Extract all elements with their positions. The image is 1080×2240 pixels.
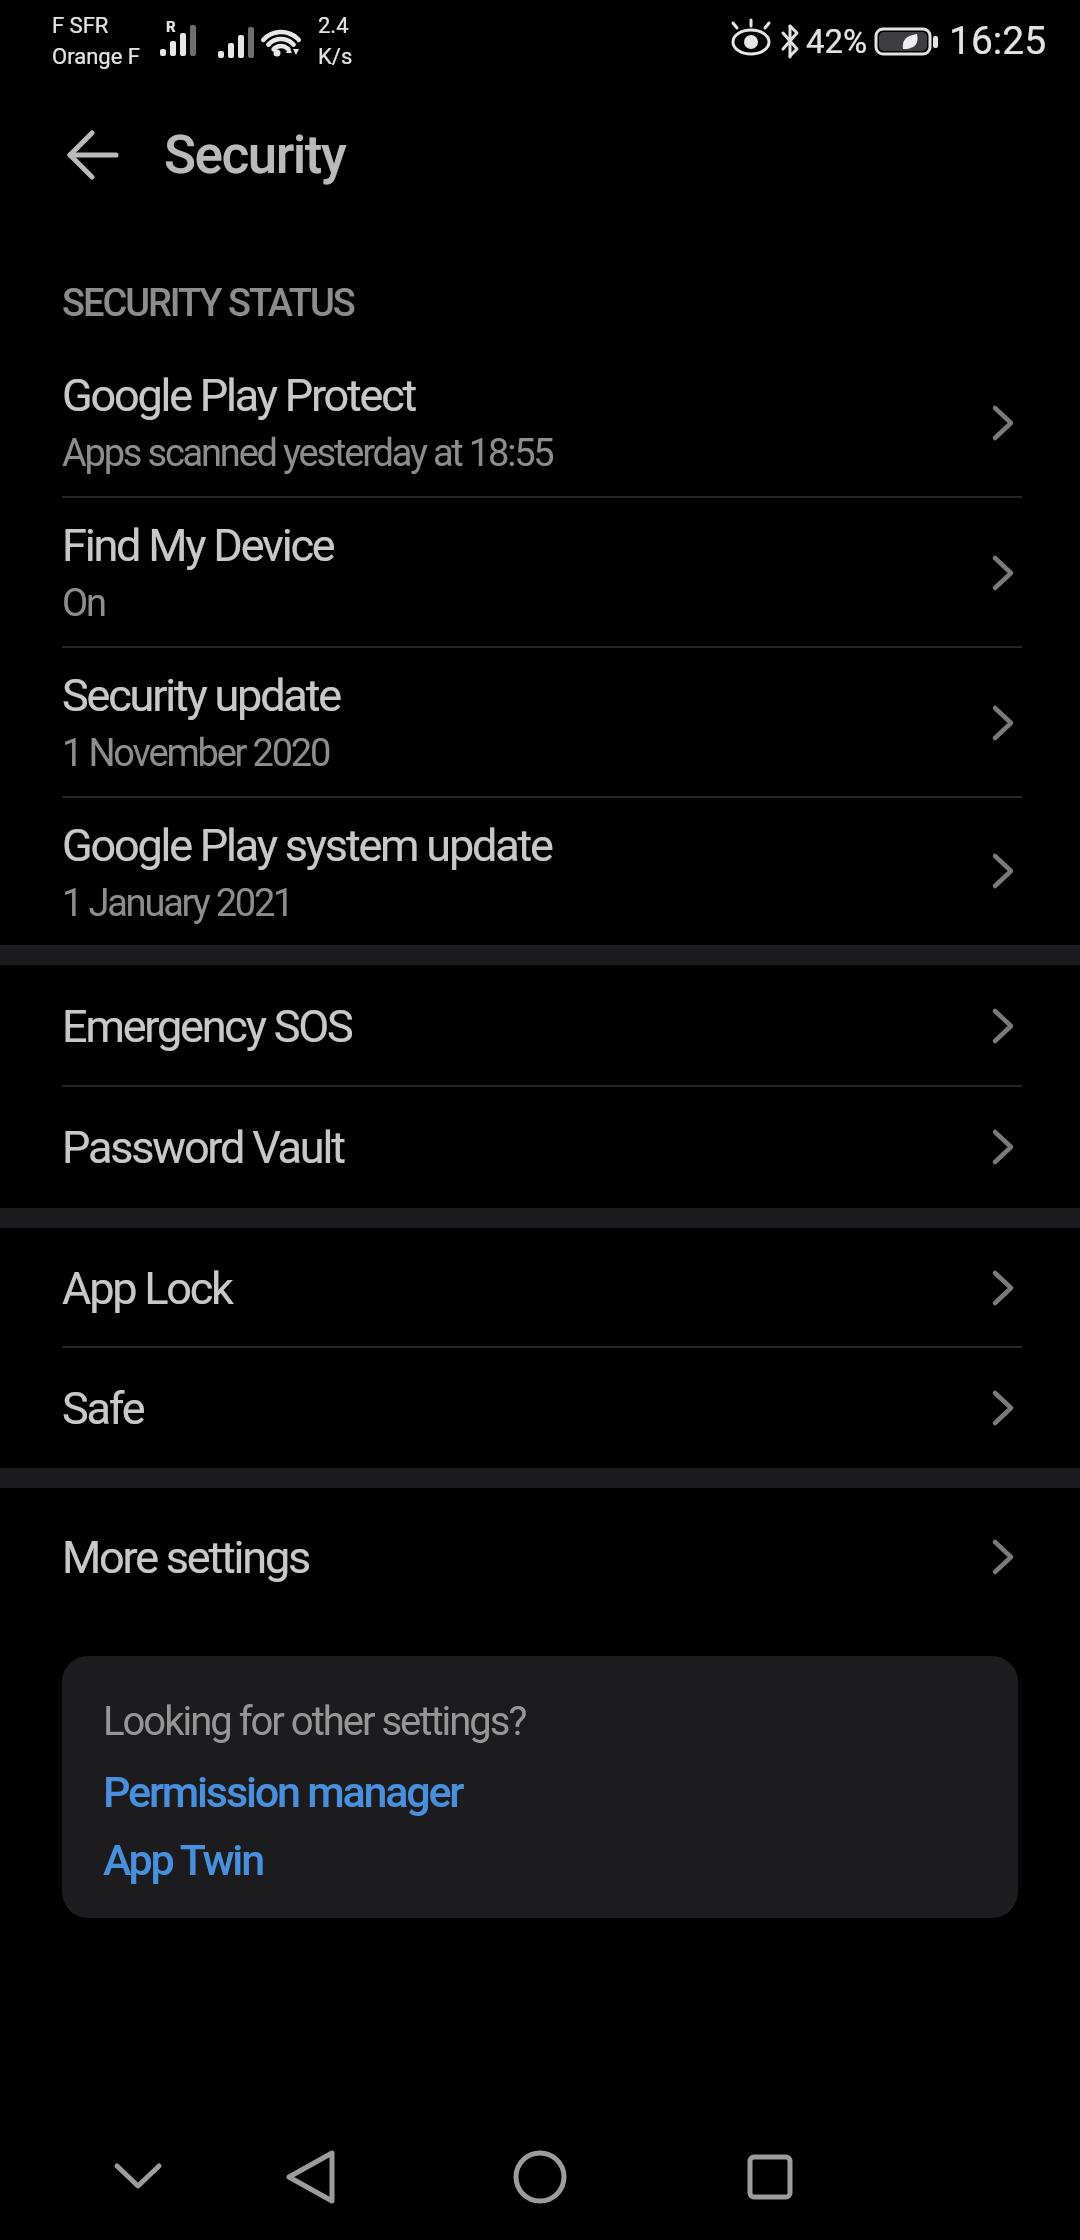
- button[interactable]: Safe: [0, 1348, 1080, 1468]
- button[interactable]: Google Play Protect: [0, 348, 1080, 498]
- staticText: 42%: [806, 22, 868, 61]
- staticText: Safe: [62, 1382, 144, 1435]
- staticText: K/s: [318, 44, 353, 70]
- button[interactable]: [278, 2145, 344, 2209]
- staticText: R: [166, 18, 176, 36]
- button[interactable]: [508, 2145, 572, 2209]
- staticText: App Twin: [103, 1835, 263, 1885]
- staticText: 1 January 2021: [62, 881, 293, 926]
- staticText: Password Vault: [62, 1121, 344, 1174]
- staticText: F SFR: [52, 13, 109, 39]
- staticText: 16:25: [949, 18, 1047, 64]
- button[interactable]: More settings: [0, 1488, 1080, 1626]
- staticText: App Lock: [62, 1262, 232, 1315]
- staticText: Orange F: [52, 44, 140, 70]
- staticText: Google Play Protect: [62, 369, 416, 422]
- button[interactable]: Emergency SOS: [0, 965, 1080, 1087]
- staticText: Looking for other settings?: [103, 1698, 526, 1745]
- button[interactable]: [48, 121, 138, 189]
- staticText: 1 November 2020: [62, 731, 330, 776]
- staticText: Security update: [62, 669, 340, 722]
- staticText: On: [62, 581, 105, 626]
- staticText: 2.4: [318, 13, 349, 39]
- button[interactable]: [738, 2145, 802, 2209]
- button[interactable]: Security update: [0, 648, 1080, 798]
- staticText: Google Play system update: [62, 819, 552, 872]
- staticText: Apps scanned yesterday at 18:55: [62, 431, 553, 476]
- staticText: Find My Device: [62, 519, 334, 572]
- staticText: More settings: [62, 1531, 310, 1584]
- button[interactable]: App Lock: [0, 1228, 1080, 1348]
- button[interactable]: App Twin: [103, 1830, 263, 1890]
- button[interactable]: Find My Device: [0, 498, 1080, 648]
- button[interactable]: Permission manager: [103, 1762, 463, 1822]
- button[interactable]: Password Vault: [0, 1087, 1080, 1208]
- staticText: Permission manager: [103, 1767, 463, 1817]
- staticText: Security: [164, 124, 346, 186]
- staticText: Emergency SOS: [62, 1000, 352, 1053]
- button[interactable]: Google Play system update: [0, 798, 1080, 945]
- staticText: SECURITY STATUS: [62, 281, 354, 326]
- button[interactable]: [105, 2145, 171, 2209]
